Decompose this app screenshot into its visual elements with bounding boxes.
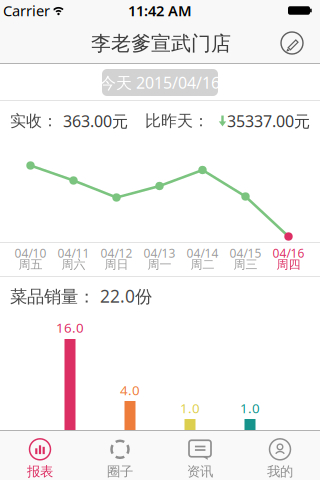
staticText: 363.00元 [63,110,128,132]
staticText: 16.0 [56,319,84,336]
staticText: 04/13 [143,245,175,261]
button[interactable]: 今天 2015/04/16 [102,69,218,96]
staticText: 04/10 [14,245,46,261]
staticText: 04/15 [229,245,261,261]
button[interactable]: 圈子 [80,432,160,480]
staticText: 04/12 [100,245,132,261]
staticText: 35337.00元 [227,110,310,132]
staticText: 圈子 [107,463,133,480]
staticText: 4.0 [120,381,140,399]
staticText: 资讯 [187,463,213,480]
staticText: 报表 [27,463,53,480]
staticText: 周六 [61,257,85,272]
staticText: 周二 [190,257,214,272]
staticText: 比昨天： [145,111,214,131]
staticText: Carrier [3,1,50,20]
staticText: 04/11 [57,245,89,261]
staticText: 周三 [233,257,257,272]
staticText: 周日 [104,257,128,272]
staticText: 我的 [267,463,293,480]
staticText: 11:42 AM [128,1,192,20]
staticText: 菜品销量： 22.0份 [10,284,152,307]
button[interactable]: 报表 [0,432,80,480]
staticText: 1.0 [240,399,260,417]
button[interactable]: Edit [277,28,307,58]
staticText: 04/16 [272,245,304,261]
button[interactable]: 资讯 [160,432,240,480]
staticText: 周五 [18,257,42,272]
staticText: 实收： [10,111,63,131]
staticText: 李老爹宣武门店 [91,31,231,56]
staticText: 周四 [276,257,300,272]
staticText: 今天 2015/04/16 [100,72,220,93]
staticText: 1.0 [180,399,200,417]
staticText: 周一 [147,257,171,272]
button[interactable]: 我的 [240,432,320,480]
staticText: 04/14 [186,245,218,261]
